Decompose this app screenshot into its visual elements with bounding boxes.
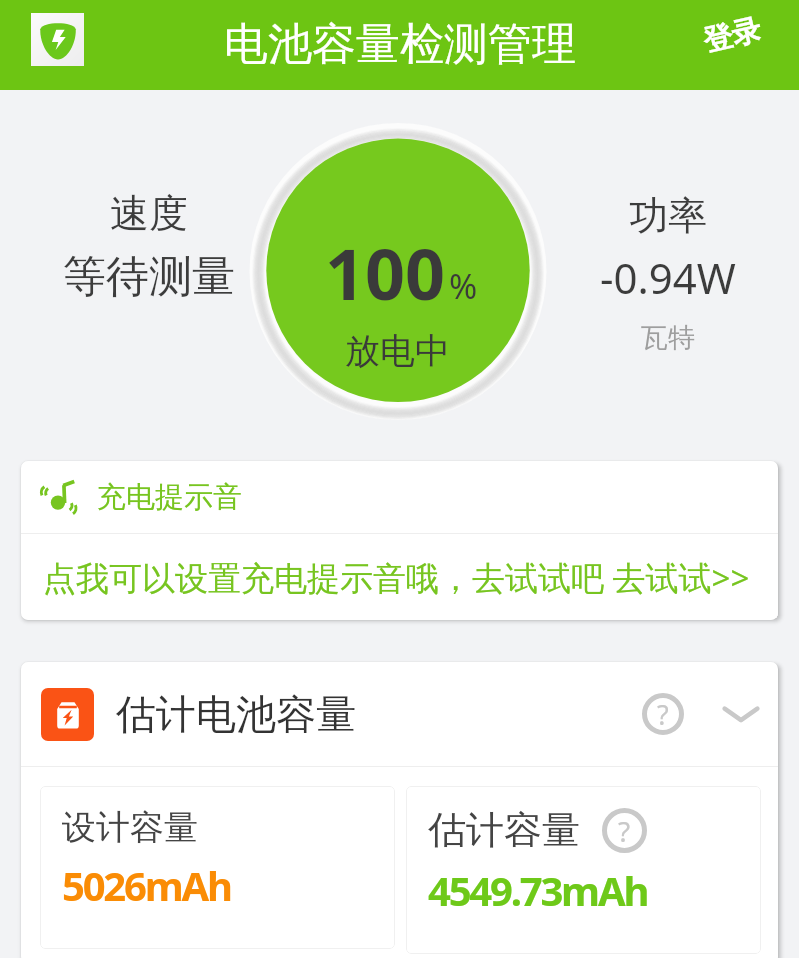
- staticText: 功率: [629, 191, 707, 240]
- staticText: 登录: [700, 11, 764, 60]
- staticText: 估计电池容量: [116, 689, 356, 739]
- staticText: ?: [657, 696, 669, 733]
- staticText: 5026mAh: [62, 858, 231, 912]
- staticText: 100: [325, 225, 446, 320]
- button[interactable]: 登录: [700, 12, 764, 58]
- staticText: -0.94W: [600, 249, 736, 306]
- button[interactable]: 点我可以设置充电提示音哦，去试试吧 去试试>>: [21, 534, 778, 620]
- button[interactable]: 估计电池容量: [21, 662, 778, 766]
- staticText: 瓦特: [641, 321, 695, 355]
- staticText: 设计容量: [62, 806, 198, 849]
- staticText: 放电中: [260, 329, 535, 373]
- staticText: 估计容量: [428, 806, 580, 854]
- button[interactable]: 设计容量: [40, 786, 395, 949]
- staticText: %: [449, 263, 478, 309]
- button[interactable]: Help: [636, 687, 690, 741]
- staticText: 等待测量: [63, 250, 235, 304]
- staticText: 充电提示音: [97, 479, 242, 516]
- staticText: ?: [618, 812, 631, 850]
- staticText: 点我可以设置充电提示音哦，去试试吧 去试试>>: [43, 555, 750, 600]
- staticText: 4549.73mAh: [428, 863, 648, 917]
- staticText: 电池容量检测管理: [224, 17, 576, 72]
- button[interactable]: 充电提示音: [21, 461, 778, 533]
- button[interactable]: App logo: [31, 13, 84, 66]
- button[interactable]: 估计容量: [406, 786, 761, 954]
- button[interactable]: Expand: [716, 689, 766, 739]
- staticText: 速度: [110, 189, 188, 238]
